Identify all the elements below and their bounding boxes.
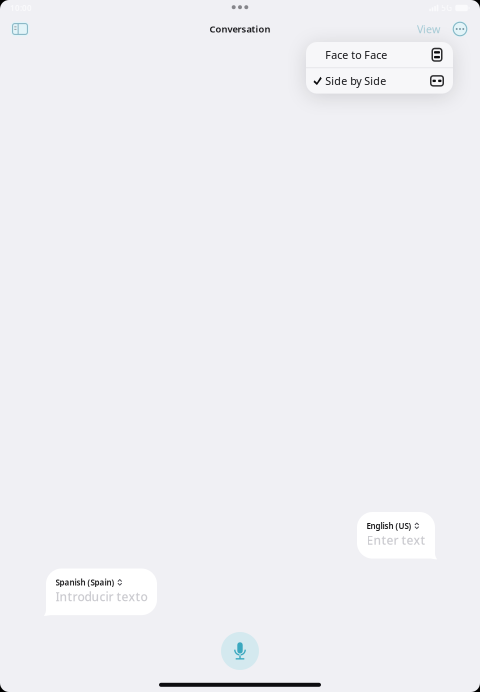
button[interactable]: Spanish (Spain) <box>55 577 123 588</box>
button[interactable]: Spanish (Spain) <box>46 569 157 615</box>
button[interactable]: Start Listening <box>221 632 259 670</box>
staticText: Conversation <box>209 23 270 35</box>
staticText: Face to Face <box>325 48 387 62</box>
button[interactable]: English (US) <box>366 520 420 531</box>
button[interactable]: Face to Face <box>306 42 453 67</box>
button[interactable]: View <box>413 15 444 43</box>
button[interactable]: More Options <box>448 15 472 43</box>
staticText: Introducir texto <box>55 589 147 605</box>
staticText: Side by Side <box>325 74 386 88</box>
button[interactable]: English (US) <box>357 512 435 559</box>
staticText: 10:00 <box>10 3 32 13</box>
staticText: View <box>417 22 440 36</box>
staticText: Spanish (Spain) <box>55 577 114 588</box>
button[interactable]: Show Sidebar <box>4 15 36 43</box>
button[interactable]: Side by Side <box>306 68 453 94</box>
staticText: English (US) <box>366 520 411 531</box>
staticText: Enter text <box>366 532 425 548</box>
